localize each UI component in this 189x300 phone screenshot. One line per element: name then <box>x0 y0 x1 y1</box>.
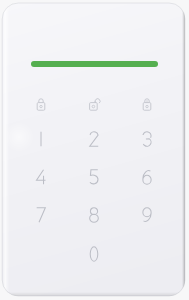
button[interactable]: Digit 8 <box>69 198 119 232</box>
button[interactable]: Digit 2 <box>69 122 119 156</box>
button[interactable]: Digit 9 <box>122 198 172 232</box>
button[interactable]: Digit 0 <box>69 237 119 271</box>
button[interactable]: Disarm <box>82 91 106 113</box>
button[interactable]: Digit 1 <box>16 122 66 156</box>
button[interactable]: Digit 4 <box>16 160 66 194</box>
button[interactable]: Digit 7 <box>16 198 66 232</box>
button[interactable]: Arm home <box>135 91 159 113</box>
button[interactable]: Digit 5 <box>69 160 119 194</box>
button[interactable]: Digit 3 <box>122 122 172 156</box>
button[interactable]: Arm away <box>29 91 53 113</box>
button[interactable]: Digit 6 <box>122 160 172 194</box>
